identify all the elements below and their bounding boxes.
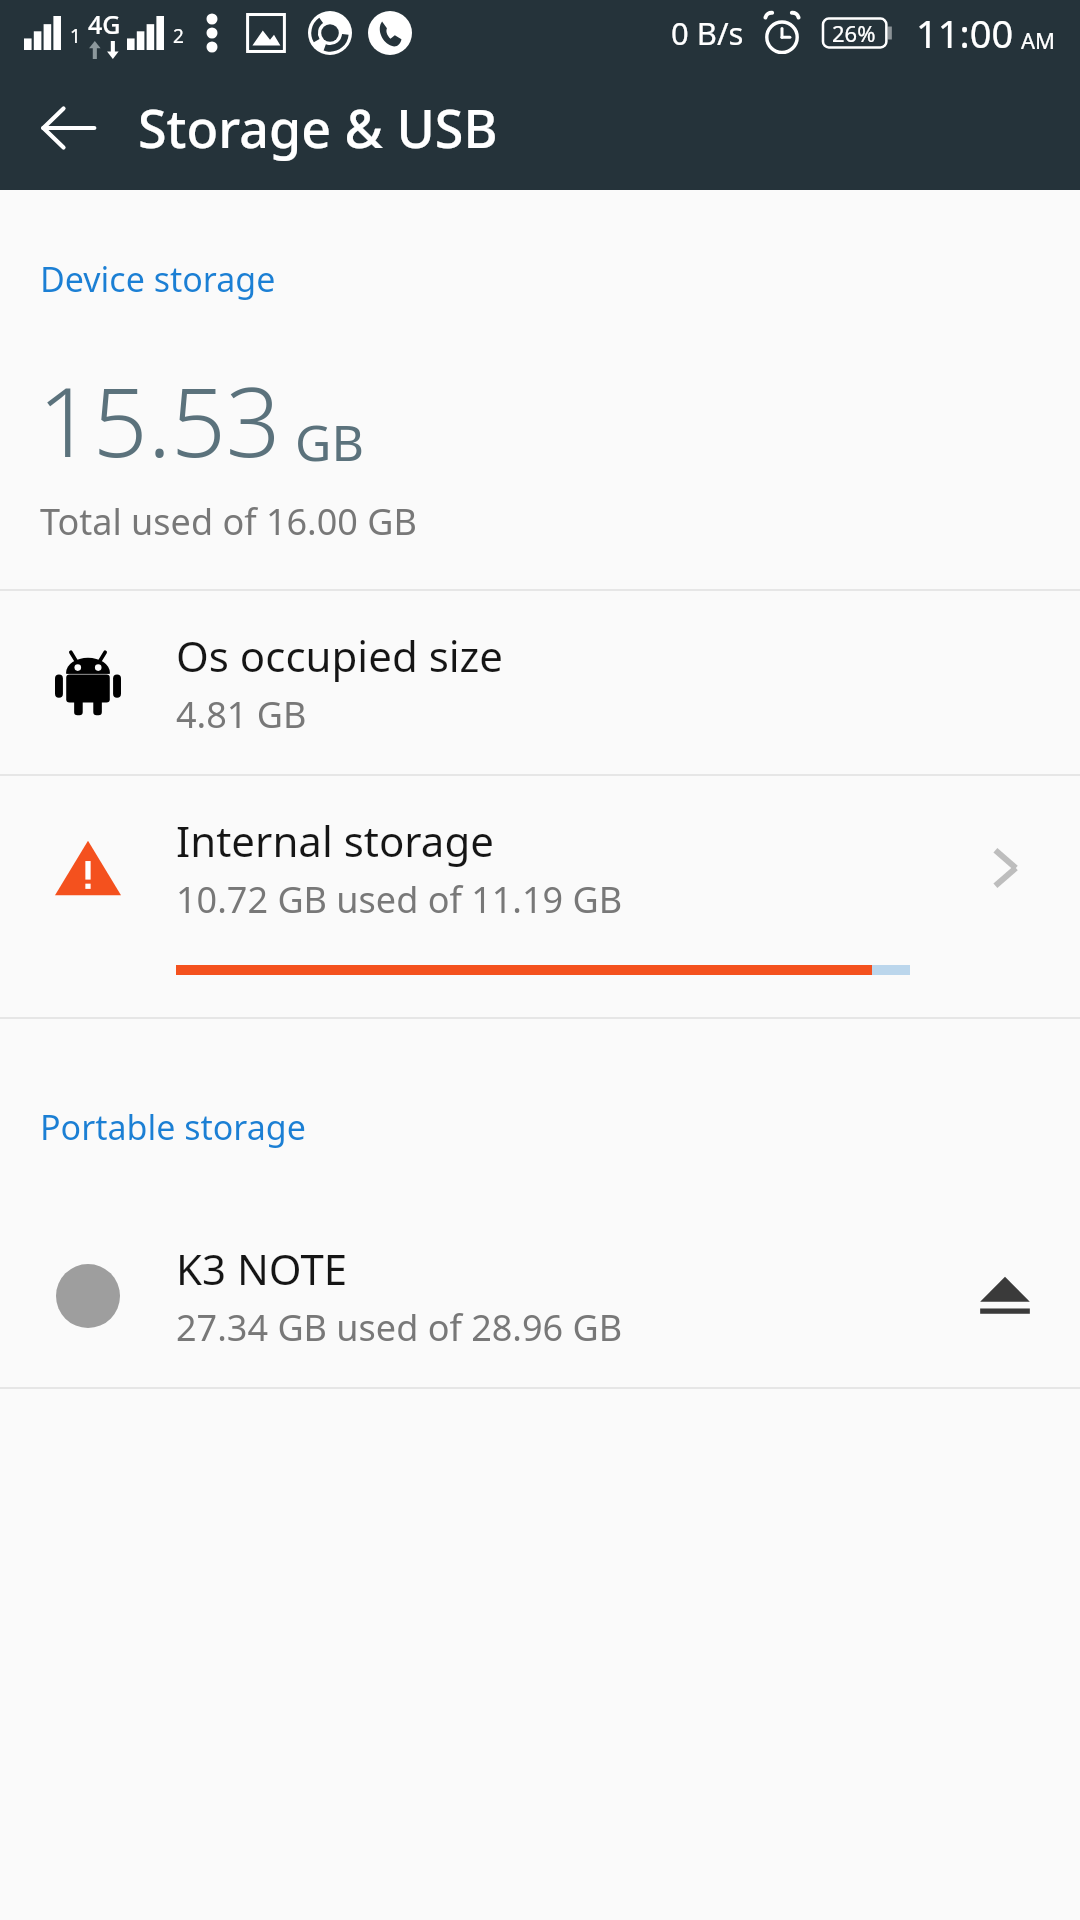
staticText: GB [295,408,364,476]
staticText: K3 NOTE [176,1240,348,1297]
staticText: 1 [70,23,81,49]
staticText: Internal storage [176,812,494,869]
staticText: 0 B/s [671,12,744,54]
button[interactable]: Eject [930,1204,1080,1387]
staticText: Device storage [40,256,276,302]
staticText: 27.34 GB used of 28.96 GB [176,1303,623,1352]
other: Open internal storage [930,776,1080,959]
button[interactable]: Internal storage [0,776,1080,1017]
button[interactable]: Os occupied size [0,591,1080,774]
staticText: AM [1021,25,1056,55]
staticText: 2 [173,23,184,49]
button[interactable]: K3 NOTE [0,1204,1080,1387]
staticText: Portable storage [40,1104,306,1150]
staticText: 26% [832,18,876,48]
staticText: Total used of 16.00 GB [40,497,417,546]
staticText: Os occupied size [176,627,504,684]
staticText: 15.53 [38,354,281,485]
button[interactable]: Back [20,80,116,176]
staticText: Storage & USB [138,92,498,163]
staticText: 4G [88,7,121,41]
staticText: 11:00 [916,7,1014,59]
staticText: 4.81 GB [176,690,307,739]
staticText: 10.72 GB used of 11.19 GB [176,875,623,924]
